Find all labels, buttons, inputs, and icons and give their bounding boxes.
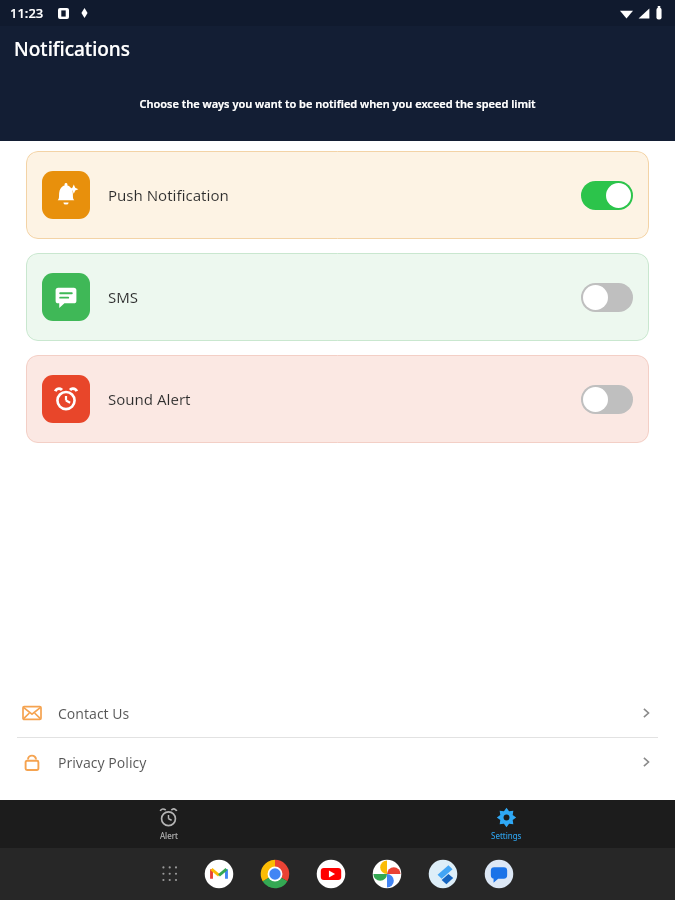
staticText: Push Notification xyxy=(108,185,229,205)
staticText: Notifications xyxy=(14,36,131,62)
button[interactable]: Contact Us xyxy=(0,689,675,737)
staticText: Choose the ways you want to be notified … xyxy=(20,96,655,111)
button[interactable]: Alert xyxy=(0,800,337,848)
button[interactable]: All apps xyxy=(160,864,180,884)
button[interactable]: Push Notification xyxy=(26,151,649,239)
button[interactable]: Off xyxy=(581,385,633,414)
staticText: 11:23 xyxy=(10,4,44,22)
button[interactable]: YouTube xyxy=(314,857,348,891)
button[interactable]: Photos xyxy=(370,857,404,891)
button[interactable]: Flutter xyxy=(426,857,460,891)
button[interactable]: Privacy Policy xyxy=(0,738,675,786)
button[interactable]: Settings xyxy=(337,800,675,848)
button[interactable]: Chrome xyxy=(258,857,292,891)
staticText: Sound Alert xyxy=(108,389,191,409)
staticText: Privacy Policy xyxy=(58,753,147,772)
staticText: Contact Us xyxy=(58,704,130,723)
button[interactable]: Sound Alert xyxy=(26,355,649,443)
button[interactable]: Off xyxy=(581,283,633,312)
staticText: Alert xyxy=(160,830,178,841)
button[interactable]: On xyxy=(581,181,633,210)
button[interactable]: Gmail xyxy=(202,857,236,891)
staticText: SMS xyxy=(108,287,139,307)
staticText: Settings xyxy=(491,830,522,841)
button[interactable]: SMS xyxy=(26,253,649,341)
button[interactable]: Messages xyxy=(482,857,516,891)
